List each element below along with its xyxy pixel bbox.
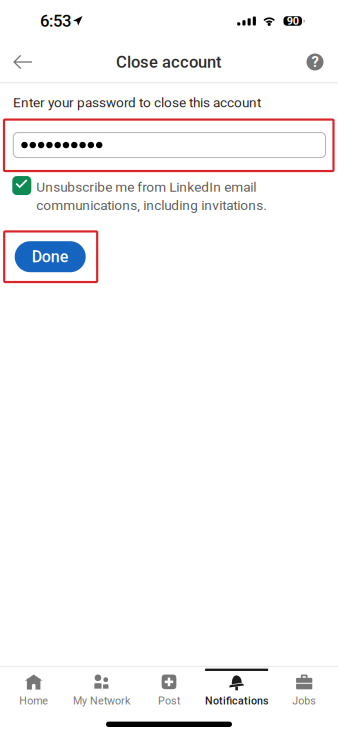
button[interactable]: Back bbox=[0, 42, 45, 82]
staticText: Notifications bbox=[205, 694, 268, 707]
staticText: 90 bbox=[287, 15, 299, 27]
staticText: ? bbox=[311, 53, 318, 71]
staticText: Home bbox=[19, 694, 48, 707]
staticText: Unsubscribe me from LinkedIn email bbox=[36, 179, 256, 195]
staticText: communications, including invitations. bbox=[36, 197, 267, 213]
button[interactable]: Home bbox=[0, 669, 68, 704]
staticText: Jobs bbox=[292, 694, 316, 707]
button[interactable]: Done bbox=[15, 241, 86, 272]
button[interactable]: Notifications bbox=[203, 669, 270, 704]
staticText: Done bbox=[32, 247, 69, 266]
staticText: 6:53 bbox=[40, 11, 71, 31]
staticText: Close account bbox=[116, 52, 222, 72]
button[interactable]: Help bbox=[292, 42, 338, 82]
staticText: Enter your password to close this accoun… bbox=[13, 95, 261, 110]
staticText: Post bbox=[158, 694, 180, 707]
staticText: My Network bbox=[73, 694, 130, 707]
button[interactable]: Jobs bbox=[270, 669, 338, 704]
button[interactable]: Post bbox=[135, 669, 203, 704]
button[interactable]: My Network bbox=[68, 669, 135, 704]
